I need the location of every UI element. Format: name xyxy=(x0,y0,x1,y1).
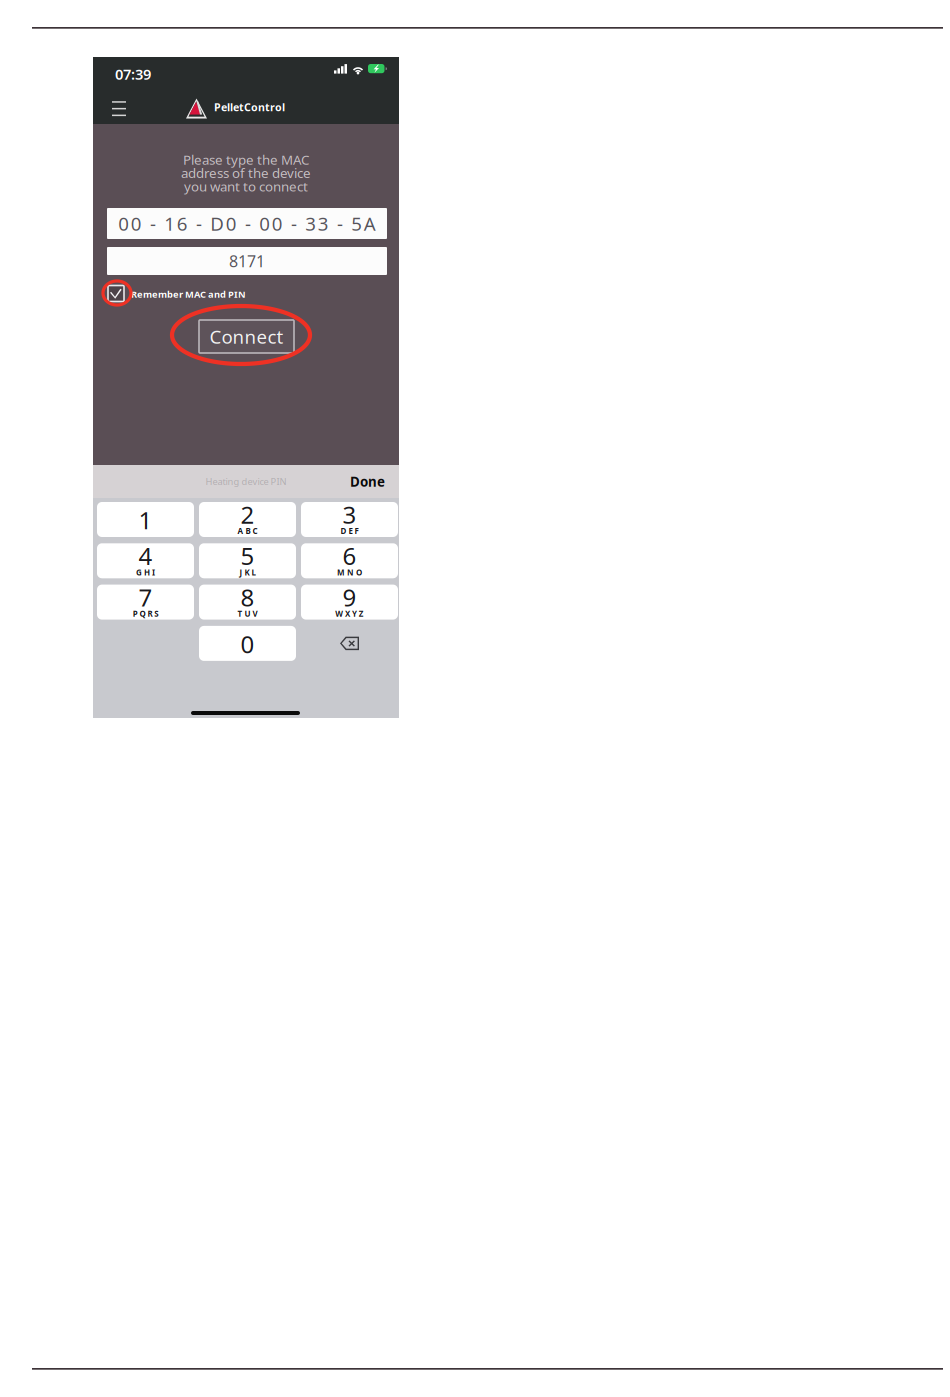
staticText: B xyxy=(245,526,250,536)
staticText: 0 xyxy=(240,628,254,660)
button[interactable]: Delete xyxy=(301,626,398,661)
staticText: 07:39 xyxy=(115,64,151,84)
button[interactable]: 3 xyxy=(301,502,398,537)
button[interactable]: 5 xyxy=(199,543,296,578)
staticText: Done xyxy=(350,473,385,490)
button[interactable]: 1 xyxy=(97,502,194,537)
staticText: Z xyxy=(359,608,364,619)
staticText: 6 xyxy=(342,540,356,572)
staticText: E xyxy=(348,526,352,536)
staticText: Heating device PIN xyxy=(205,475,286,488)
staticText: PelletControl xyxy=(214,100,285,114)
staticText: V xyxy=(252,608,257,619)
staticText: 00 - 16 - D0 - 00 - 33 - 5A xyxy=(118,211,376,236)
button[interactable]: Remember MAC and PIN xyxy=(108,285,268,303)
staticText: I xyxy=(152,567,155,578)
staticText: R xyxy=(147,608,152,619)
staticText: M xyxy=(337,567,345,578)
staticText: X xyxy=(345,608,350,619)
button[interactable]: 9 xyxy=(301,585,398,620)
staticText: Q xyxy=(140,608,146,619)
staticText: D xyxy=(341,526,347,536)
button[interactable]: 7 xyxy=(97,585,194,620)
staticText: C xyxy=(252,526,257,536)
staticText: Please type the MAC xyxy=(183,151,309,168)
staticText: 3 xyxy=(342,499,356,530)
button[interactable]: 8 xyxy=(199,585,296,620)
staticText: G xyxy=(136,567,142,578)
button[interactable]: Done xyxy=(333,465,385,498)
staticText: Remember MAC and PIN xyxy=(131,288,246,300)
staticText: W xyxy=(335,608,343,619)
staticText: 9 xyxy=(342,581,356,613)
staticText: 4 xyxy=(138,540,152,572)
button[interactable]: 6 xyxy=(301,543,398,578)
button[interactable]: 0 xyxy=(199,626,296,661)
staticText: 1 xyxy=(138,504,152,536)
staticText: K xyxy=(244,567,249,578)
button[interactable]: Menu xyxy=(106,95,132,123)
button[interactable]: 2 xyxy=(199,502,296,537)
staticText: S xyxy=(154,608,158,619)
staticText: you want to connect xyxy=(184,177,308,195)
staticText: O xyxy=(356,567,362,578)
staticText: N xyxy=(347,567,354,578)
staticText: 2 xyxy=(240,499,254,530)
staticText: H xyxy=(144,567,150,578)
staticText: F xyxy=(354,526,358,536)
staticText: 8 xyxy=(240,581,254,613)
staticText: P xyxy=(133,608,138,619)
staticText: 8171 xyxy=(229,250,265,272)
staticText: A xyxy=(238,526,244,536)
staticText: T xyxy=(238,608,243,619)
staticText: L xyxy=(251,567,255,578)
staticText: J xyxy=(240,567,243,578)
button[interactable]: 4 xyxy=(97,543,194,578)
staticText: Connect xyxy=(209,324,283,349)
staticText: Y xyxy=(352,608,357,619)
staticText: 7 xyxy=(138,581,152,613)
button[interactable]: Connect xyxy=(199,320,294,353)
staticText: U xyxy=(244,608,250,619)
staticText: address of the device xyxy=(181,164,311,182)
staticText: 5 xyxy=(240,540,254,572)
